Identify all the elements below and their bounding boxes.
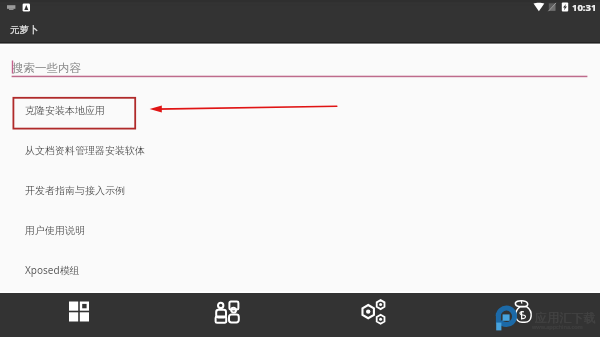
- staticText: 用户使用说明: [25, 224, 85, 237]
- button[interactable]: 开发者指南与接入示例: [0, 170, 600, 210]
- button[interactable]: Contacts: [150, 293, 300, 337]
- button[interactable]: Modules: [300, 293, 450, 337]
- staticText: 应用汇下载: [535, 310, 596, 325]
- staticText: 元萝卜: [10, 24, 39, 36]
- button[interactable]: Xposed模组: [0, 250, 600, 290]
- button[interactable]: 从文档资料管理器安装软体: [0, 130, 600, 170]
- staticText: 10:31: [572, 1, 597, 14]
- button[interactable]: 克隆安装本地应用: [0, 90, 600, 130]
- staticText: 开发者指南与接入示例: [25, 184, 125, 197]
- staticText: www.appchina.com: [532, 323, 583, 330]
- staticText: 从文档资料管理器安装软体: [25, 144, 145, 157]
- button[interactable]: Apps: [0, 293, 150, 337]
- staticText: 克隆安装本地应用: [25, 104, 105, 117]
- button[interactable]: Wallet: [450, 293, 600, 337]
- button[interactable]: 用户使用说明: [0, 210, 600, 250]
- staticText: 搜索一些内容: [12, 61, 81, 75]
- staticText: Xposed模组: [25, 263, 80, 277]
